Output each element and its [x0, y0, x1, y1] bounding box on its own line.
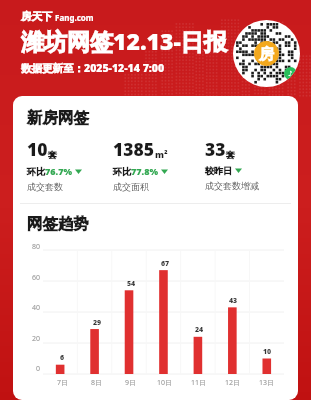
staticText: 12日	[225, 378, 241, 388]
button[interactable]: 扫描二维码关注房天下	[233, 20, 300, 87]
staticText: 新房网签	[27, 108, 89, 128]
staticText: 8日	[91, 378, 103, 388]
staticText: 较昨日	[205, 165, 232, 176]
staticText: 10	[263, 347, 272, 357]
staticText: 网签趋势	[27, 214, 89, 234]
staticText: 60	[32, 273, 41, 283]
staticText: 环比	[113, 166, 131, 177]
staticText: 套	[48, 149, 57, 160]
staticText: 67	[161, 259, 170, 269]
staticText: 套	[226, 149, 235, 160]
staticText: 77.8%	[131, 165, 158, 177]
staticText: Fang.com	[55, 12, 94, 23]
staticText: 20	[32, 334, 41, 344]
staticText: 房	[259, 45, 274, 63]
staticText: 40	[32, 303, 41, 313]
staticText: 1385	[113, 137, 155, 161]
staticText: 7日	[57, 378, 69, 388]
staticText: 29	[93, 318, 102, 328]
staticText: 成交套数	[27, 181, 63, 192]
staticText: 成交面积	[113, 181, 149, 192]
staticText: 成交套数增减	[205, 180, 259, 191]
staticText: 43	[229, 296, 238, 306]
staticText: 环比	[27, 166, 45, 177]
staticText: 10日	[157, 378, 173, 388]
staticText: 13日	[259, 378, 275, 388]
staticText: 房天下	[21, 10, 53, 23]
button[interactable]: 10	[27, 137, 113, 192]
button[interactable]: 33	[205, 137, 290, 191]
staticText: 9日	[125, 378, 137, 388]
staticText: 潍坊网签12.13-日报	[21, 25, 227, 56]
button[interactable]: 1385	[113, 137, 205, 192]
staticText: 6	[60, 353, 65, 363]
staticText: 24	[195, 325, 204, 335]
staticText: 0	[36, 364, 41, 374]
staticText: 10	[27, 137, 48, 161]
staticText: ♪	[288, 70, 293, 78]
staticText: 数据更新至：2025-12-14 7:00	[21, 61, 165, 75]
staticText: 80	[32, 242, 41, 252]
staticText: 54	[127, 279, 136, 289]
staticText: 33	[205, 137, 226, 161]
staticText: 11日	[191, 378, 207, 388]
staticText: m²	[155, 148, 168, 160]
staticText: 76.7%	[45, 165, 72, 177]
